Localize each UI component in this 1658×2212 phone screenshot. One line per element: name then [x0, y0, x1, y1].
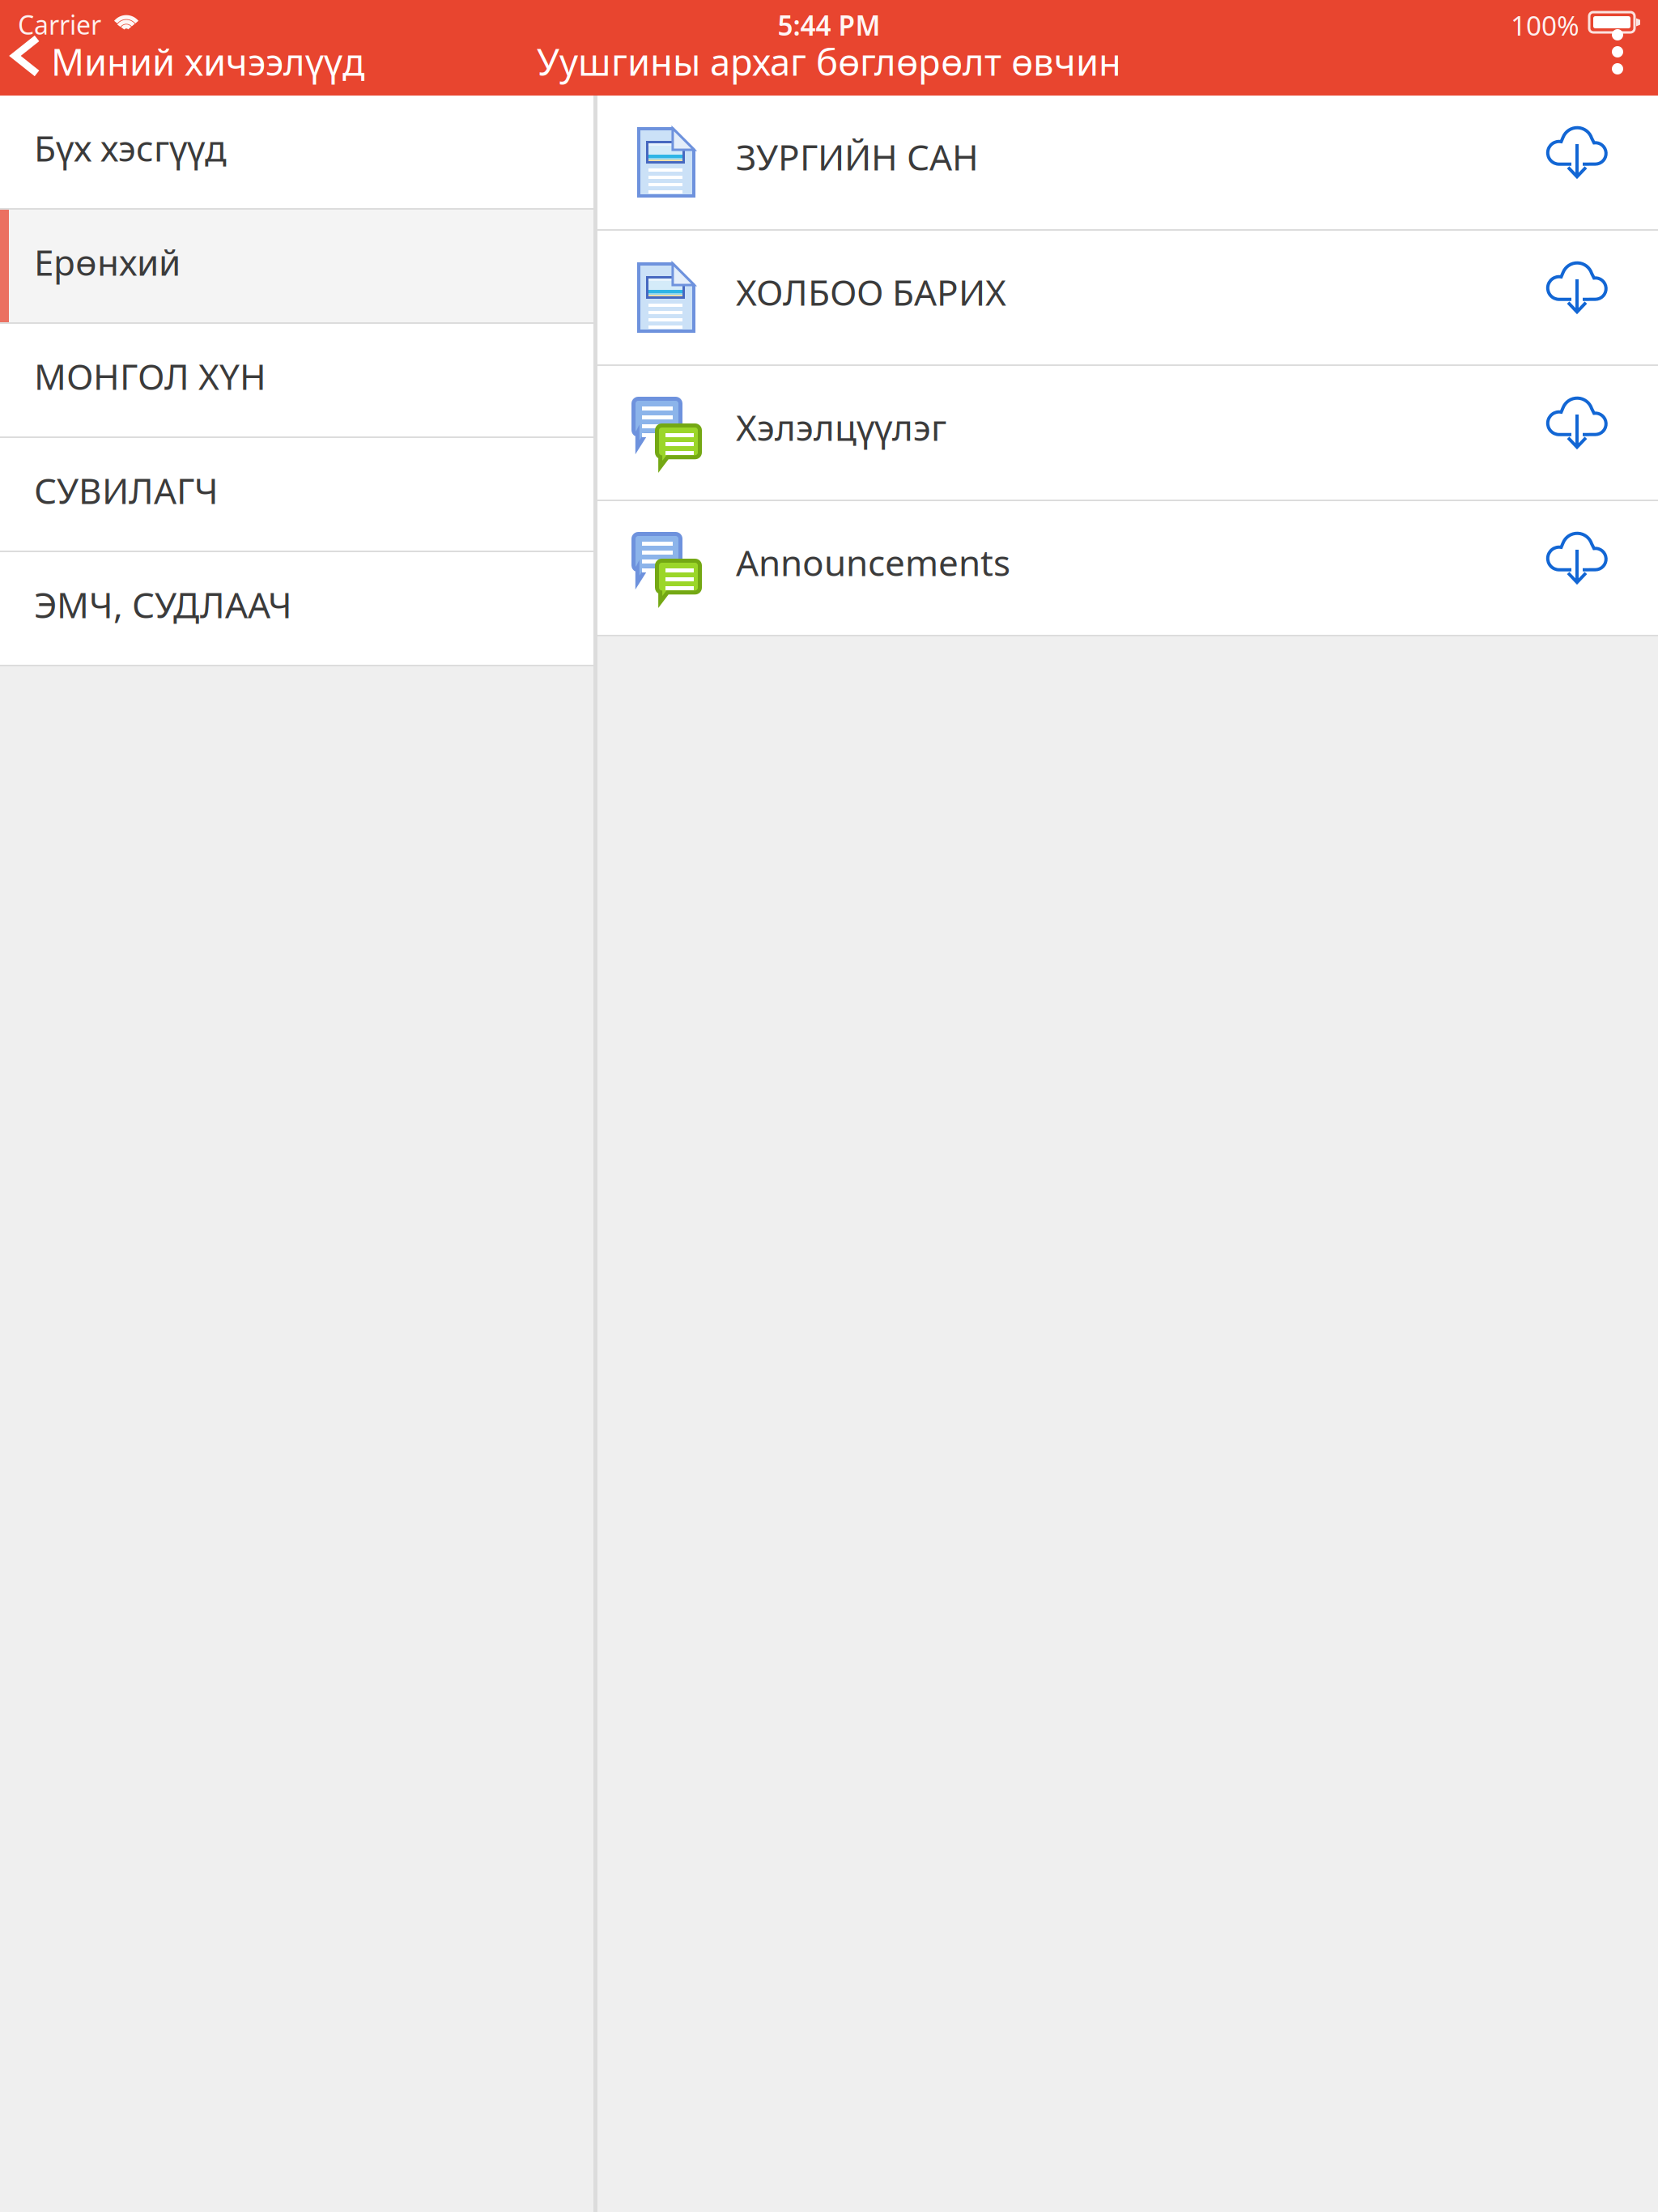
button[interactable]: СУВИЛАГЧ: [0, 438, 593, 552]
button[interactable]: Announcements: [597, 501, 1658, 636]
staticText: 5:44 PM: [778, 7, 880, 43]
staticText: МОНГОЛ ХҮН: [34, 352, 266, 400]
button[interactable]: ЗУРГИЙН САН: [597, 96, 1658, 231]
button[interactable]: More options: [1592, 27, 1643, 77]
staticText: Announcements: [736, 539, 1010, 586]
staticText: ЭМЧ, СУДЛААЧ: [34, 581, 292, 628]
staticText: Уушгины архаг бөглөрөлт өвчин: [537, 37, 1121, 86]
button[interactable]: Хэлэлцүүлэг: [597, 366, 1658, 501]
button[interactable]: Миний хичээлүүд: [0, 32, 386, 91]
staticText: Хэлэлцүүлэг: [736, 403, 946, 451]
staticText: ХОЛБОО БАРИХ: [736, 268, 1006, 316]
staticText: 100%: [1511, 7, 1579, 43]
button[interactable]: Бүх хэсгүүд: [0, 96, 593, 210]
staticText: ЗУРГИЙН САН: [736, 133, 979, 180]
button[interactable]: Ерөнхий: [0, 210, 593, 324]
button[interactable]: ХОЛБОО БАРИХ: [597, 231, 1658, 366]
staticText: Carrier: [18, 7, 101, 42]
staticText: Ерөнхий: [34, 238, 181, 286]
button[interactable]: ЭМЧ, СУДЛААЧ: [0, 552, 593, 666]
staticText: Миний хичээлүүд: [51, 37, 365, 86]
staticText: Бүх хэсгүүд: [34, 124, 227, 171]
staticText: СУВИЛАГЧ: [34, 467, 219, 514]
button[interactable]: МОНГОЛ ХҮН: [0, 324, 593, 438]
